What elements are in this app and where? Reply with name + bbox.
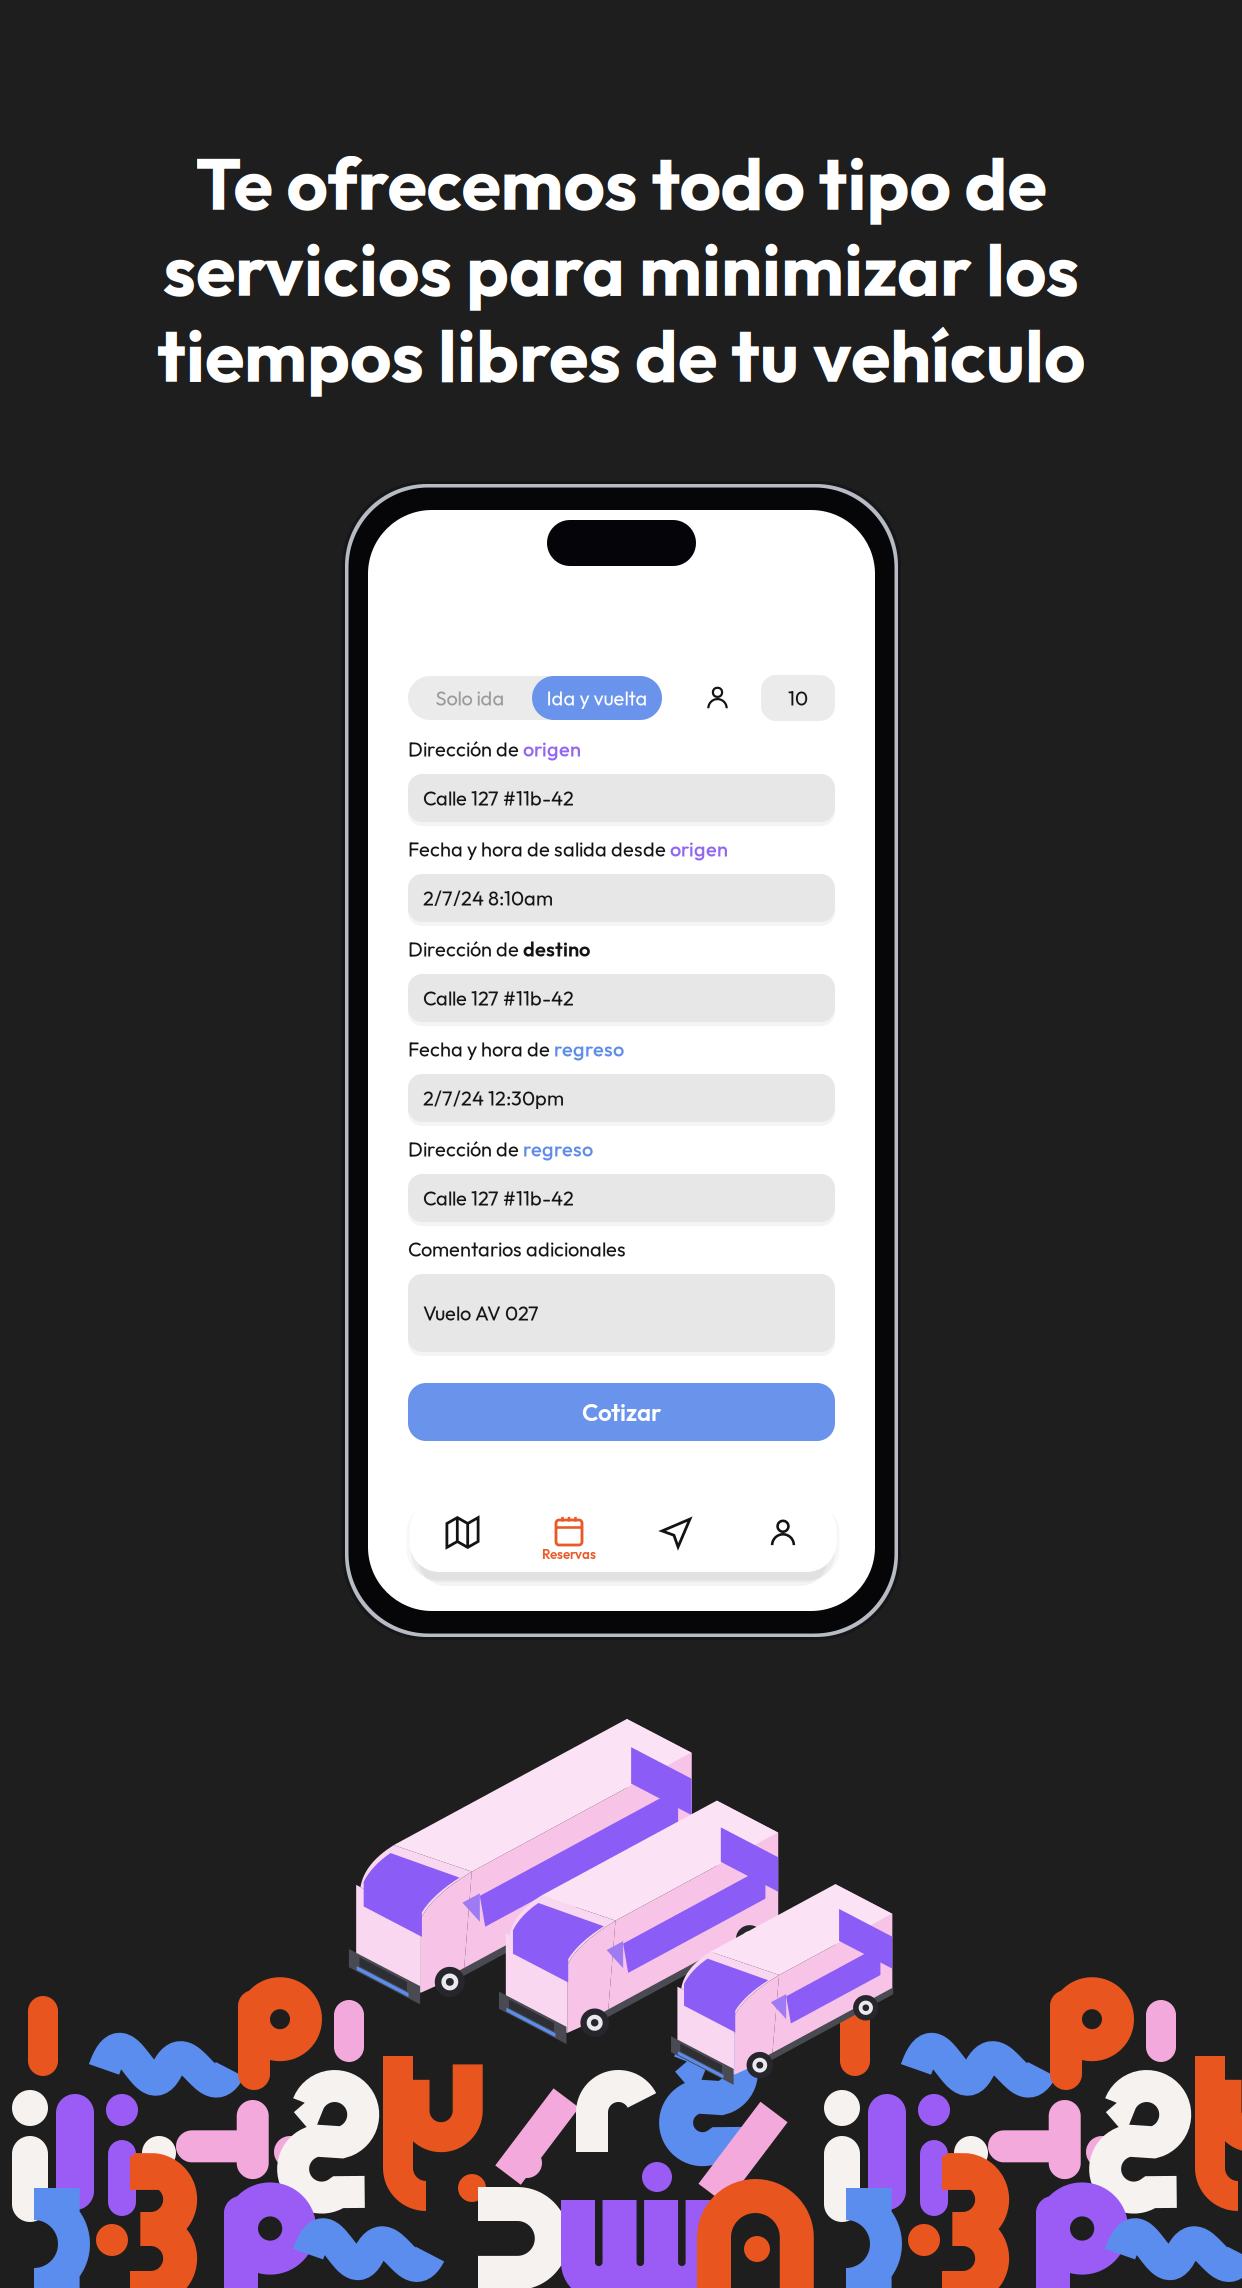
staticText: tiempos libres de tu vehículo: [157, 310, 1085, 400]
button[interactable]: Solo ida: [408, 676, 662, 720]
staticText: Calle 127 #11b-42: [423, 785, 574, 811]
staticText: Reservas: [542, 1546, 596, 1562]
staticText: Dirección de: [408, 1136, 523, 1162]
button[interactable]: 2/7/24 8:10am: [408, 874, 835, 922]
staticText: regreso: [523, 1136, 593, 1162]
button[interactable]: Calle 127 #11b-42: [408, 1174, 835, 1222]
staticText: 10: [788, 685, 808, 711]
button[interactable]: Navegar: [622, 1500, 729, 1572]
staticText: Fecha y hora de: [408, 1036, 554, 1062]
button[interactable]: 2/7/24 12:30pm: [408, 1074, 835, 1122]
staticText: Dirección de: [408, 936, 523, 962]
staticText: 2/7/24 12:30pm: [423, 1085, 564, 1111]
staticText: regreso: [554, 1036, 624, 1062]
button[interactable]: Calle 127 #11b-42: [408, 774, 835, 822]
button[interactable]: Cotizar: [408, 1383, 835, 1441]
staticText: destino: [523, 936, 590, 962]
staticText: Calle 127 #11b-42: [423, 1185, 574, 1211]
button[interactable]: Mapa: [409, 1500, 515, 1572]
button[interactable]: 10: [761, 675, 835, 721]
staticText: Ida y vuelta: [546, 685, 647, 711]
staticText: Vuelo AV 027: [423, 1300, 539, 1326]
staticText: 2/7/24 8:10am: [423, 885, 553, 911]
staticText: Calle 127 #11b-42: [423, 985, 574, 1011]
staticText: origen: [523, 736, 581, 762]
button[interactable]: Vuelo AV 027: [408, 1274, 835, 1352]
staticText: origen: [670, 836, 728, 862]
button[interactable]: Calle 127 #11b-42: [408, 974, 835, 1022]
staticText: Dirección de: [408, 736, 523, 762]
staticText: Te ofrecemos todo tipo de: [195, 138, 1046, 228]
button[interactable]: Reservas: [515, 1500, 622, 1572]
staticText: servicios para minimizar los: [163, 224, 1079, 314]
staticText: Comentarios adicionales: [408, 1236, 630, 1262]
button[interactable]: Pasajeros: [704, 684, 731, 711]
staticText: Cotizar: [582, 1397, 661, 1427]
staticText: Fecha y hora de salida desde: [408, 836, 670, 862]
staticText: Solo ida: [435, 685, 504, 711]
button[interactable]: Perfil: [729, 1500, 836, 1572]
